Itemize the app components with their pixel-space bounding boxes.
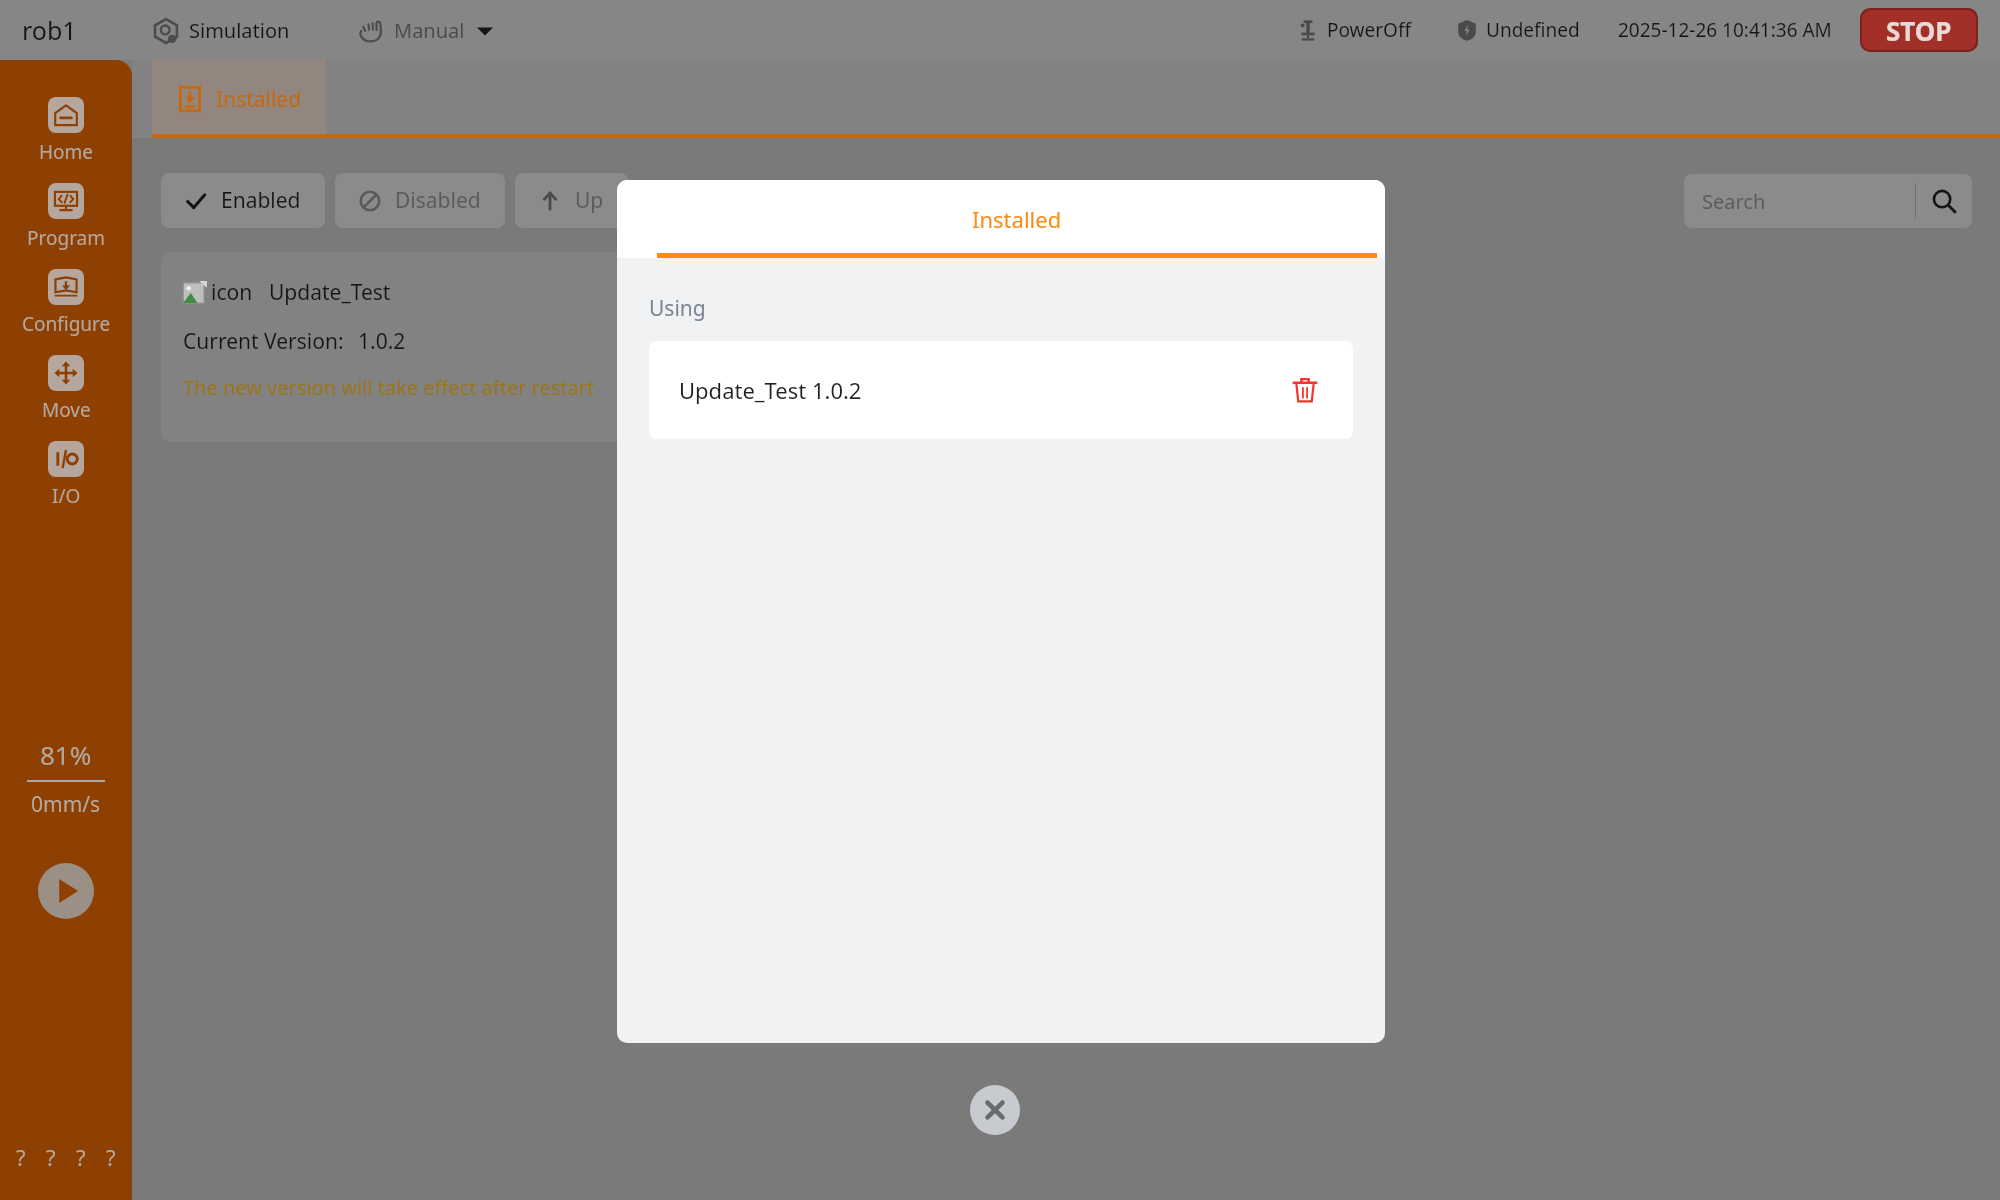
button[interactable]: Update_Test 1.0.2 [649, 341, 1353, 439]
staticText: Up [575, 186, 604, 215]
staticText: STOP [1886, 13, 1952, 48]
staticText: Using [649, 294, 706, 323]
button[interactable]: PowerOff [1293, 13, 1416, 47]
staticText: Move [42, 397, 91, 423]
button[interactable]: Configure [0, 260, 132, 346]
button[interactable]: Search [1684, 174, 1972, 228]
button[interactable]: Help [12, 1138, 30, 1176]
button[interactable]: Manual [354, 13, 497, 48]
button[interactable]: Enabled [161, 173, 325, 228]
staticText: ? [16, 1142, 26, 1172]
button[interactable]: Program [0, 174, 132, 260]
staticText: Search [1702, 188, 1766, 215]
staticText: 0mm/s [31, 790, 101, 819]
staticText: I/O [52, 483, 81, 509]
staticText: PowerOff [1327, 17, 1412, 43]
staticText: 2025-12-26 10:41:36 AM [1618, 17, 1832, 43]
button[interactable]: Help [42, 1138, 60, 1176]
staticText: Update_Test 1.0.2 [679, 375, 862, 405]
staticText: ? [106, 1142, 116, 1172]
staticText: Configure [22, 311, 111, 337]
staticText: Current Version: [183, 327, 344, 356]
button[interactable]: Installed [649, 180, 1385, 258]
staticText: Installed [216, 85, 302, 114]
staticText: Update_Test [269, 278, 391, 307]
staticText: icon [211, 278, 253, 307]
staticText: Undefined [1486, 17, 1580, 43]
button[interactable]: Delete [1281, 366, 1329, 414]
staticText: Installed [972, 204, 1062, 234]
button[interactable]: Play [38, 863, 94, 919]
staticText: ? [76, 1142, 86, 1172]
button[interactable]: Disabled [335, 173, 505, 228]
staticText: rob1 [22, 13, 77, 47]
button[interactable]: I/O [0, 432, 132, 518]
button[interactable]: Close [970, 1085, 1020, 1135]
staticText: Enabled [221, 186, 301, 215]
staticText: ? [46, 1142, 56, 1172]
staticText: 81% [40, 737, 92, 772]
staticText: 1.0.2 [358, 327, 406, 356]
button[interactable]: Undefined [1452, 13, 1584, 47]
button[interactable]: Help [72, 1138, 90, 1176]
button[interactable]: Up [515, 173, 628, 228]
staticText: Simulation [189, 17, 290, 44]
button[interactable]: Home [0, 88, 132, 174]
button[interactable]: Emergency Stop [1862, 10, 1976, 50]
staticText: Disabled [395, 186, 481, 215]
button[interactable]: Move [0, 346, 132, 432]
staticText: Home [39, 139, 94, 165]
button[interactable]: icon [161, 252, 781, 442]
staticText: Manual [394, 17, 465, 44]
staticText: The new version will take effect after r… [183, 374, 595, 401]
button[interactable]: Help [102, 1138, 120, 1176]
button[interactable]: Installed [152, 60, 326, 138]
button[interactable]: Simulation [149, 13, 294, 48]
staticText: Program [27, 225, 106, 251]
